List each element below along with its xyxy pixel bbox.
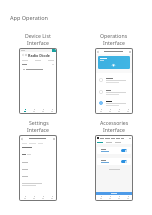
button[interactable]: Tab 3: [114, 195, 123, 200]
button[interactable]: Back: [22, 52, 54, 58]
staticText: Device List: [25, 32, 51, 39]
button[interactable]: Tab 4: [47, 108, 56, 113]
button[interactable]: [101, 149, 127, 152]
staticText: App Operation: [10, 14, 48, 21]
button[interactable]: Tab 2: [105, 108, 114, 113]
button[interactable]: Tab 3: [114, 108, 123, 113]
button[interactable]: Tab 1: [96, 195, 105, 200]
button[interactable]: [99, 98, 130, 108]
button[interactable]: Tab 4: [47, 195, 56, 200]
button[interactable]: [101, 160, 127, 163]
staticText: Operations: [100, 32, 128, 39]
button[interactable]: [98, 56, 130, 69]
button[interactable]: Tab 3: [38, 195, 47, 200]
staticText: Accessories: [100, 119, 129, 126]
button[interactable]: Tab 4: [123, 108, 132, 113]
staticText: Interface: [27, 39, 50, 46]
button[interactable]: Tab 4: [123, 195, 132, 200]
button[interactable]: [99, 86, 130, 98]
button[interactable]: Tab 3: [38, 108, 47, 113]
button[interactable]: Tab 1: [20, 108, 29, 113]
button[interactable]: Tab 2: [29, 195, 38, 200]
button[interactable]: Tab 1: [96, 108, 105, 113]
staticText: Settings: [29, 119, 49, 126]
staticText: Interface: [27, 126, 50, 133]
button[interactable]: Tab 2: [105, 195, 114, 200]
staticText: Interface: [103, 39, 126, 46]
button[interactable]: Tab 2: [29, 108, 38, 113]
staticText: Interface: [103, 126, 126, 133]
button[interactable]: [96, 192, 132, 195]
staticText: Radio Diode: [28, 53, 50, 58]
button[interactable]: Tab 1: [20, 195, 29, 200]
button[interactable]: [99, 74, 130, 86]
